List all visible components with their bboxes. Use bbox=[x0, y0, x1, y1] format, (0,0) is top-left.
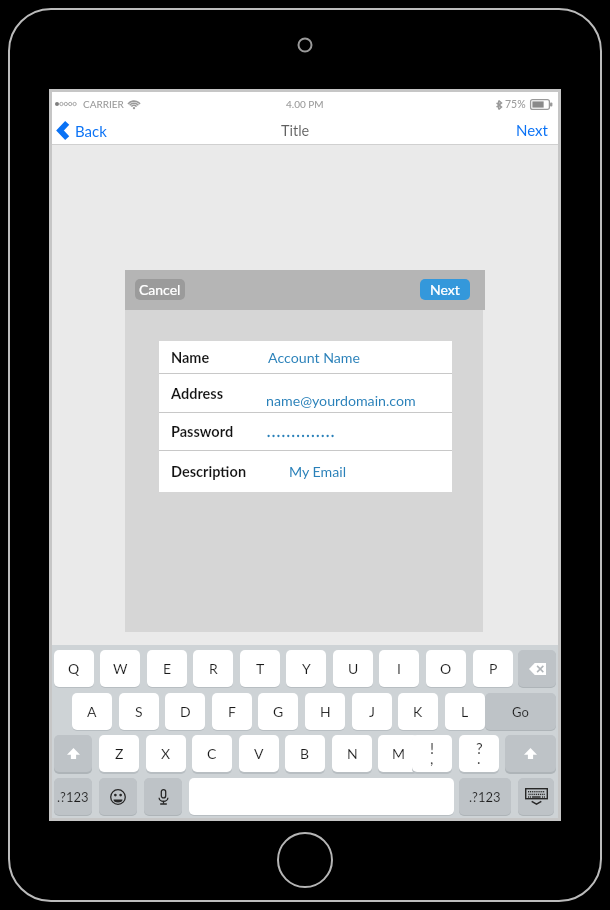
staticText: .?123 bbox=[57, 789, 89, 805]
button[interactable]: Next bbox=[506, 118, 558, 142]
button[interactable]: Description bbox=[159, 451, 452, 492]
button[interactable]: Password bbox=[159, 413, 452, 450]
button[interactable]: E bbox=[147, 650, 187, 687]
staticText: U bbox=[348, 660, 359, 677]
button[interactable]: Next bbox=[420, 279, 470, 300]
button[interactable]: Go bbox=[485, 693, 556, 730]
button[interactable]: R bbox=[193, 650, 233, 687]
staticText: Description bbox=[171, 463, 247, 480]
button[interactable]: G bbox=[258, 693, 298, 730]
button[interactable]: .?123 bbox=[54, 778, 92, 815]
staticText: K bbox=[413, 703, 423, 720]
staticText: X bbox=[161, 745, 171, 762]
staticText: ? bbox=[476, 739, 483, 757]
staticText: Back bbox=[75, 122, 107, 140]
staticText: name@yourdomain.com bbox=[266, 392, 416, 409]
staticText: J bbox=[369, 703, 375, 720]
button[interactable]: Dictation bbox=[144, 778, 182, 815]
button[interactable]: ! bbox=[412, 735, 452, 772]
staticText: T bbox=[256, 660, 265, 677]
staticText: E bbox=[163, 660, 172, 677]
button[interactable]: D bbox=[165, 693, 205, 730]
button[interactable]: Emoji bbox=[99, 778, 137, 815]
staticText: CARRIER bbox=[83, 98, 124, 110]
staticText: N bbox=[347, 745, 358, 762]
staticText: 75% bbox=[505, 98, 526, 111]
staticText: ! bbox=[430, 739, 435, 757]
button[interactable]: W bbox=[100, 650, 140, 687]
staticText: . bbox=[477, 749, 481, 767]
button[interactable]: V bbox=[239, 735, 279, 772]
button[interactable]: N bbox=[332, 735, 372, 772]
button[interactable]: U bbox=[333, 650, 373, 687]
staticText: My Email bbox=[289, 463, 347, 480]
staticText: V bbox=[254, 745, 264, 762]
button[interactable]: B bbox=[285, 735, 325, 772]
button[interactable]: A bbox=[72, 693, 112, 730]
staticText: Y bbox=[302, 660, 311, 677]
button[interactable]: F bbox=[212, 693, 252, 730]
button[interactable]: L bbox=[445, 693, 485, 730]
button[interactable]: Cancel bbox=[135, 279, 185, 300]
staticText: S bbox=[135, 703, 143, 720]
staticText: .?123 bbox=[469, 789, 501, 805]
staticText: 4.00 PM bbox=[286, 98, 324, 110]
staticText: Go bbox=[512, 704, 529, 720]
button[interactable]: O bbox=[426, 650, 466, 687]
staticText: , bbox=[430, 749, 434, 767]
button[interactable]: Q bbox=[54, 650, 94, 687]
button[interactable]: C bbox=[192, 735, 232, 772]
button[interactable]: P bbox=[473, 650, 513, 687]
button[interactable]: T bbox=[240, 650, 280, 687]
staticText: R bbox=[209, 660, 218, 677]
button[interactable]: Shift bbox=[54, 735, 92, 772]
button[interactable]: K bbox=[398, 693, 438, 730]
staticText: Z bbox=[115, 745, 124, 762]
button[interactable]: M bbox=[378, 735, 418, 772]
staticText: A bbox=[87, 703, 97, 720]
staticText: Next bbox=[430, 281, 460, 298]
staticText: C bbox=[207, 745, 217, 762]
button[interactable]: S bbox=[119, 693, 159, 730]
staticText: H bbox=[320, 703, 331, 720]
button[interactable]: Backspace bbox=[518, 650, 556, 687]
button[interactable]: Shift bbox=[505, 735, 556, 772]
button[interactable]: Name bbox=[159, 341, 452, 373]
button[interactable]: J bbox=[352, 693, 392, 730]
staticText: Password bbox=[171, 423, 234, 440]
staticText: Title bbox=[281, 122, 310, 139]
staticText: Name bbox=[171, 349, 210, 366]
button[interactable]: Address bbox=[159, 374, 452, 412]
staticText: Account Name bbox=[268, 349, 361, 366]
staticText: Cancel bbox=[139, 281, 181, 298]
staticText: P bbox=[489, 660, 498, 677]
button[interactable]: ? bbox=[459, 735, 499, 772]
staticText: G bbox=[273, 703, 284, 720]
staticText: Address bbox=[171, 385, 224, 402]
button[interactable]: .?123 bbox=[459, 778, 511, 815]
staticText: Q bbox=[68, 660, 80, 677]
staticText: W bbox=[113, 660, 128, 677]
staticText: M bbox=[392, 745, 405, 762]
staticText: O bbox=[440, 660, 452, 677]
button[interactable]: Hide keyboard bbox=[518, 778, 554, 815]
button[interactable]: Y bbox=[286, 650, 326, 687]
staticText: D bbox=[180, 703, 191, 720]
button[interactable]: X bbox=[146, 735, 186, 772]
button[interactable]: H bbox=[305, 693, 345, 730]
button[interactable]: Back bbox=[52, 119, 117, 142]
button[interactable]: I bbox=[379, 650, 419, 687]
staticText: I bbox=[397, 660, 401, 677]
button[interactable]: Z bbox=[99, 735, 139, 772]
staticText: F bbox=[228, 703, 236, 720]
staticText: B bbox=[300, 745, 310, 762]
staticText: L bbox=[461, 703, 469, 720]
